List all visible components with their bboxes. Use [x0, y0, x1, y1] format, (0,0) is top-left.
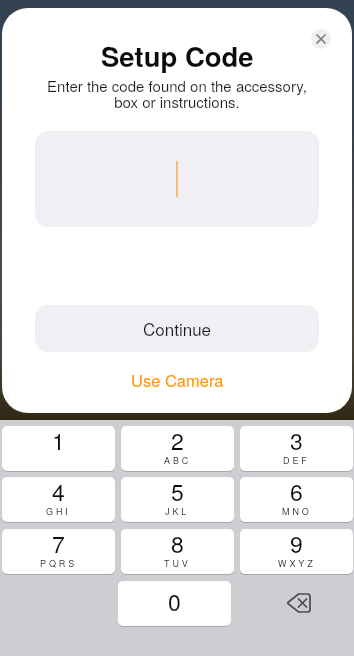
staticText: Continue — [143, 316, 212, 340]
staticText: Setup Code — [101, 36, 254, 75]
button[interactable]: 7 — [2, 529, 115, 574]
button[interactable] — [35, 131, 319, 227]
button[interactable]: 9 — [240, 529, 353, 574]
button[interactable]: Close — [311, 29, 331, 49]
staticText: 2 — [171, 426, 184, 457]
staticText: GHI — [46, 505, 71, 518]
button[interactable]: 4 — [2, 477, 115, 522]
staticText: JKL — [165, 505, 190, 518]
staticText: WXYZ — [278, 557, 316, 570]
button[interactable]: 0 — [118, 581, 231, 626]
button[interactable]: Backspace — [239, 581, 352, 627]
button[interactable]: 3 — [240, 426, 353, 471]
staticText: Use Camera — [131, 368, 224, 392]
button[interactable]: Use Camera — [97, 364, 257, 396]
button[interactable]: 8 — [121, 529, 234, 574]
button[interactable]: 1 — [2, 426, 115, 471]
staticText: 3 — [290, 426, 303, 457]
button[interactable]: 6 — [240, 477, 353, 522]
button[interactable]: 2 — [121, 426, 234, 471]
button[interactable]: Continue — [35, 305, 319, 352]
staticText: 5 — [171, 477, 184, 508]
staticText: MNO — [282, 505, 312, 518]
staticText: 0 — [168, 585, 181, 618]
staticText: 9 — [290, 529, 303, 560]
staticText: 4 — [52, 477, 65, 508]
staticText: PQRS — [40, 557, 78, 570]
staticText: ABC — [164, 454, 192, 467]
staticText: TUV — [164, 557, 191, 570]
staticText: 1 — [52, 426, 65, 457]
staticText: 7 — [52, 529, 65, 560]
staticText: 6 — [290, 477, 303, 508]
staticText: Enter the code found on the accessory, b… — [47, 75, 307, 112]
staticText: DEF — [283, 454, 310, 467]
button[interactable]: 5 — [121, 477, 234, 522]
staticText: 8 — [171, 529, 184, 560]
